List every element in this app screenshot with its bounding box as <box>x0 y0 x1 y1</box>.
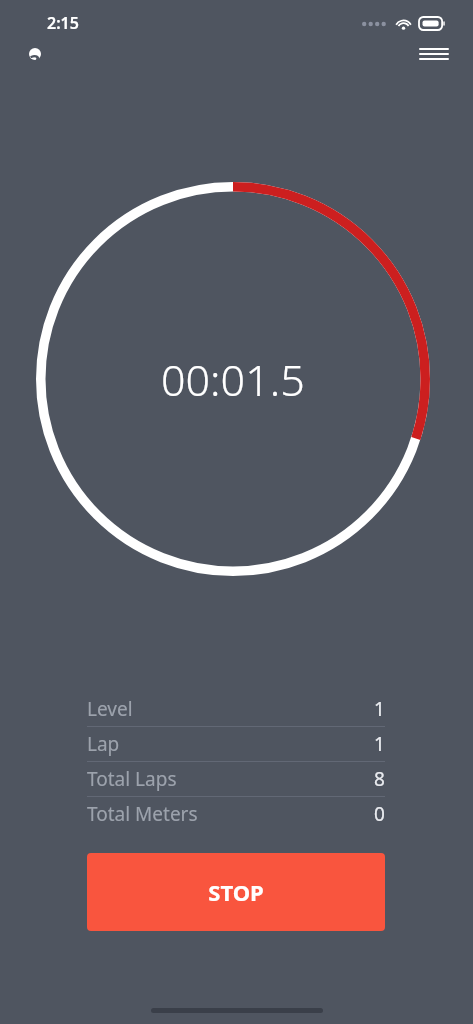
staticText: 0 <box>374 801 385 827</box>
staticText: 1 <box>374 696 385 722</box>
button[interactable]: Help <box>18 48 52 60</box>
button[interactable]: Menu <box>415 48 453 60</box>
button[interactable]: Level <box>87 692 385 726</box>
staticText: 8 <box>374 766 385 792</box>
staticText: 00:01.5 <box>161 350 305 409</box>
staticText: Lap <box>87 731 120 757</box>
staticText: ? <box>30 48 40 60</box>
staticText: STOP <box>208 877 264 907</box>
staticText: 1 <box>374 731 385 757</box>
staticText: Total Meters <box>87 801 198 827</box>
staticText: 2:15 <box>47 12 79 34</box>
button[interactable]: Lap <box>87 727 385 761</box>
button[interactable]: Total Laps <box>87 762 385 796</box>
button[interactable]: Total Meters <box>87 797 385 831</box>
staticText: Total Laps <box>87 766 177 792</box>
staticText: Level <box>87 696 133 722</box>
button[interactable]: STOP <box>87 853 385 931</box>
